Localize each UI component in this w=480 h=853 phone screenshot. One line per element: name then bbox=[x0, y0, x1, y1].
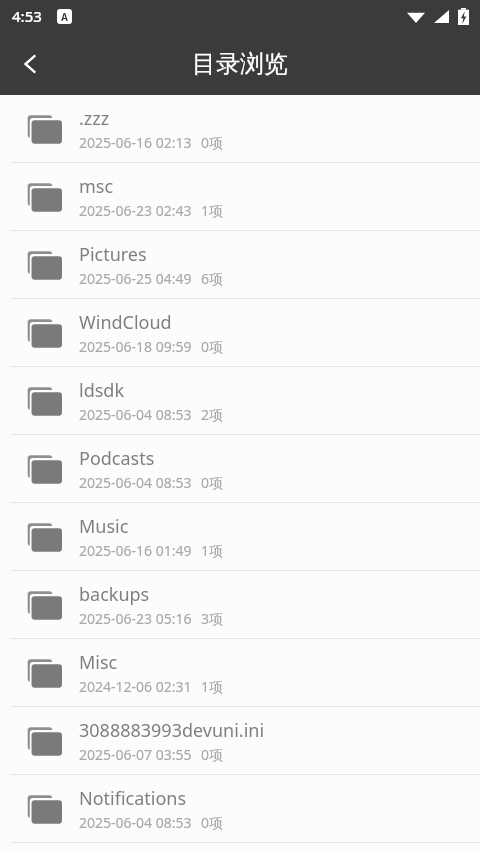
staticText: 2025-06-23 05:16 bbox=[79, 609, 192, 628]
button[interactable]: WindCloud bbox=[0, 299, 480, 367]
staticText: A bbox=[61, 10, 68, 24]
button[interactable]: .zzz bbox=[0, 95, 480, 163]
staticText: 2025-06-04 08:53 bbox=[79, 473, 192, 492]
button[interactable]: Misc bbox=[0, 639, 480, 707]
staticText: 1项 bbox=[201, 677, 224, 696]
staticText: 2025-06-18 09:59 bbox=[79, 337, 192, 356]
button[interactable]: msc bbox=[0, 163, 480, 231]
staticText: 1项 bbox=[201, 541, 224, 560]
staticText: Notifications bbox=[79, 786, 187, 811]
staticText: Misc bbox=[79, 650, 118, 675]
staticText: 2025-06-16 01:49 bbox=[79, 541, 192, 560]
staticText: backups bbox=[79, 582, 150, 607]
button[interactable]: Notifications bbox=[0, 775, 480, 843]
button[interactable]: Music bbox=[0, 503, 480, 571]
staticText: 目录浏览 bbox=[192, 49, 288, 79]
staticText: 2025-06-16 02:13 bbox=[79, 133, 192, 152]
staticText: .zzz bbox=[79, 106, 110, 131]
staticText: ldsdk bbox=[79, 378, 125, 403]
staticText: WindCloud bbox=[79, 310, 172, 335]
staticText: 0项 bbox=[201, 745, 224, 764]
staticText: 2024-12-06 02:31 bbox=[79, 677, 192, 696]
staticText: Music bbox=[79, 514, 129, 539]
staticText: 1项 bbox=[201, 201, 224, 220]
button[interactable]: Podcasts bbox=[0, 435, 480, 503]
staticText: 0项 bbox=[201, 337, 224, 356]
button[interactable]: ldsdk bbox=[0, 367, 480, 435]
button[interactable]: Pictures bbox=[0, 231, 480, 299]
staticText: 4:53 bbox=[12, 6, 42, 26]
staticText: Podcasts bbox=[79, 446, 155, 471]
staticText: 2025-06-04 08:53 bbox=[79, 813, 192, 832]
staticText: 2项 bbox=[201, 405, 224, 424]
staticText: 3项 bbox=[201, 609, 224, 628]
button[interactable]: 3088883993devuni.ini bbox=[0, 707, 480, 775]
staticText: 0项 bbox=[201, 813, 224, 832]
staticText: 3088883993devuni.ini bbox=[79, 718, 265, 743]
staticText: 2025-06-07 03:55 bbox=[79, 745, 192, 764]
staticText: 2025-06-25 04:49 bbox=[79, 269, 192, 288]
staticText: msc bbox=[79, 174, 114, 199]
staticText: 6项 bbox=[201, 269, 224, 288]
staticText: 2025-06-23 02:43 bbox=[79, 201, 192, 220]
staticText: 0项 bbox=[201, 133, 224, 152]
staticText: 0项 bbox=[201, 473, 224, 492]
staticText: 2025-06-04 08:53 bbox=[79, 405, 192, 424]
button[interactable]: backups bbox=[0, 571, 480, 639]
button[interactable]: Back bbox=[8, 41, 54, 87]
staticText: Pictures bbox=[79, 242, 147, 267]
